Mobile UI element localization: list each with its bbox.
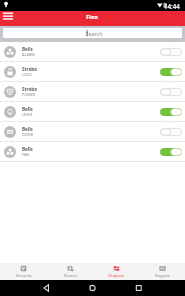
button[interactable]: Bells bbox=[0, 102, 185, 122]
staticText: Keypad bbox=[155, 273, 170, 279]
staticText: Bells bbox=[22, 106, 33, 112]
button[interactable]: Menu bbox=[2, 11, 14, 23]
button[interactable]: Bells bbox=[0, 142, 185, 162]
button[interactable]: Off bbox=[160, 48, 182, 56]
staticText: FAN bbox=[22, 152, 30, 157]
staticText: Search bbox=[85, 30, 103, 37]
staticText: Strobe bbox=[22, 66, 38, 72]
staticText: Security bbox=[16, 273, 32, 279]
staticText: DOOR bbox=[22, 132, 34, 137]
button[interactable]: Off bbox=[160, 128, 182, 136]
button[interactable]: On bbox=[160, 148, 182, 156]
staticText: Bells bbox=[22, 146, 33, 152]
staticText: 14:44 bbox=[164, 2, 180, 10]
staticText: Bells bbox=[22, 46, 33, 52]
staticText: Flex bbox=[86, 13, 99, 21]
staticText: Outputs bbox=[108, 273, 125, 279]
button[interactable]: Outputs bbox=[93, 263, 139, 280]
button[interactable]: Security bbox=[0, 263, 47, 280]
staticText: POWER bbox=[22, 92, 36, 97]
staticText: Events bbox=[64, 273, 77, 279]
button[interactable]: Events bbox=[47, 263, 93, 280]
button[interactable]: On bbox=[160, 68, 182, 76]
button[interactable]: Bells bbox=[0, 42, 185, 62]
button[interactable]: Strobe bbox=[0, 62, 185, 82]
staticText: LIGHT bbox=[22, 112, 33, 117]
staticText: LOCK bbox=[22, 72, 32, 77]
staticText: Bells bbox=[22, 126, 33, 132]
button[interactable]: Search bbox=[3, 28, 182, 38]
button[interactable]: Bells bbox=[0, 122, 185, 142]
button[interactable]: On bbox=[160, 108, 182, 116]
staticText: ALARM bbox=[22, 52, 35, 57]
button[interactable]: Keypad bbox=[139, 263, 185, 280]
button[interactable]: Off bbox=[160, 88, 182, 96]
staticText: Strobe bbox=[22, 86, 38, 92]
button[interactable]: Strobe bbox=[0, 82, 185, 102]
